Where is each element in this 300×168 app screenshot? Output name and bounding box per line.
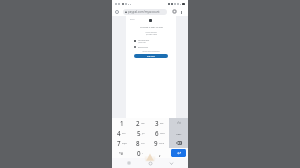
staticText: Back bbox=[130, 18, 135, 21]
staticText: 9 bbox=[154, 139, 158, 147]
button[interactable]: 7 bbox=[112, 138, 131, 148]
button[interactable]: Backspace bbox=[169, 138, 188, 148]
staticText: GHI bbox=[122, 132, 126, 135]
button[interactable]: *# bbox=[112, 148, 131, 158]
staticText: $24.00 USD bbox=[146, 33, 157, 36]
button[interactable]: , bbox=[150, 148, 169, 158]
staticText: ABC bbox=[141, 122, 145, 125]
staticText: $0.00 USD bbox=[138, 41, 146, 43]
staticText: PayPal balance bbox=[138, 39, 150, 41]
button[interactable]: Recents bbox=[167, 159, 175, 167]
staticText: , bbox=[159, 149, 161, 157]
staticText: paypal.com/myaccount bbox=[128, 10, 160, 14]
button[interactable]: 2 bbox=[131, 118, 150, 128]
button[interactable]: 1 bbox=[112, 118, 131, 128]
button[interactable]: 6 bbox=[150, 128, 169, 138]
staticText: Choose a way to pay bbox=[140, 25, 163, 28]
button[interactable]: 0 bbox=[131, 148, 150, 158]
staticText: WXYZ bbox=[159, 142, 165, 145]
button[interactable]: Enter bbox=[169, 148, 188, 158]
button[interactable]: Pay Now bbox=[134, 54, 168, 58]
staticText: JKL bbox=[142, 132, 145, 135]
staticText: 7 bbox=[117, 139, 121, 147]
staticText: 8 bbox=[136, 139, 140, 147]
button[interactable]: 9 bbox=[150, 138, 169, 148]
staticText: Bank account bbox=[138, 46, 149, 48]
button[interactable]: paypal.com/myaccount bbox=[123, 9, 167, 15]
staticText: + bbox=[142, 152, 144, 155]
staticText: 6 bbox=[155, 129, 159, 137]
button[interactable]: Next field bbox=[169, 128, 188, 138]
button[interactable]: Symbols bbox=[169, 118, 188, 128]
staticText: You're paying bbox=[145, 31, 157, 33]
button[interactable]: Refresh bbox=[113, 8, 120, 15]
staticText: 3 bbox=[155, 119, 159, 127]
button[interactable]: Home bbox=[146, 159, 154, 167]
staticText: Pay Now bbox=[147, 55, 155, 58]
staticText: *# bbox=[119, 151, 124, 156]
staticText: 0 bbox=[137, 149, 141, 157]
staticText: Terms and conditions bbox=[142, 50, 160, 52]
staticText: 4 bbox=[117, 129, 121, 137]
staticText: 1 bbox=[120, 119, 124, 127]
staticText: 2 bbox=[136, 119, 140, 127]
button[interactable]: 5 bbox=[131, 128, 150, 138]
staticText: Next bbox=[176, 132, 182, 135]
staticText: =\< bbox=[177, 121, 181, 125]
staticText: 5 bbox=[137, 129, 141, 137]
staticText: MNO bbox=[160, 132, 165, 135]
button[interactable]: PayPal balance bbox=[134, 39, 172, 43]
button[interactable]: Bank account bbox=[134, 46, 172, 48]
button[interactable]: 3 bbox=[150, 118, 169, 128]
staticText: DEF bbox=[160, 122, 164, 125]
button[interactable]: 4 bbox=[112, 128, 131, 138]
button[interactable]: More options bbox=[178, 9, 184, 15]
button[interactable]: 8 bbox=[131, 138, 150, 148]
button[interactable]: Tabs bbox=[171, 8, 178, 15]
button[interactable]: Back bbox=[125, 159, 133, 167]
staticText: PQRS bbox=[122, 142, 127, 145]
staticText: TUV bbox=[141, 142, 145, 145]
